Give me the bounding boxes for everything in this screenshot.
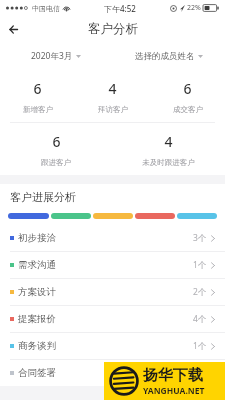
staticText: 跟进客户 [41, 158, 71, 167]
staticText: 需求沟通 [18, 259, 56, 271]
button[interactable]: 6 [150, 70, 225, 122]
staticText: 2个 [193, 286, 207, 298]
button[interactable]: 4 [112, 123, 225, 175]
staticText: 合同签署 [18, 367, 56, 379]
staticText: 4 [108, 79, 117, 98]
button[interactable]: 提案报价 [0, 306, 225, 332]
staticText: 方案设计 [18, 286, 56, 298]
staticText: 4个 [193, 313, 207, 325]
staticText: YANGHUA.NET [143, 385, 205, 397]
button[interactable]: 6 [0, 123, 112, 175]
staticText: 新增客户 [23, 105, 53, 114]
button[interactable]: 合同签署 [0, 360, 225, 386]
button[interactable]: 商务谈判 [0, 333, 225, 359]
staticText: 22% [187, 3, 201, 13]
button[interactable]: 选择的成员姓名 [112, 42, 225, 70]
staticText: 拜访客户 [98, 105, 128, 114]
staticText: 2020年3月 [31, 50, 73, 62]
staticText: 扬华下载 [143, 366, 203, 385]
staticText: 3个 [193, 232, 207, 244]
staticText: 6 [52, 132, 61, 151]
staticText: 6 [183, 79, 192, 98]
staticText: 下午4:52 [104, 3, 136, 14]
staticText: 商务谈判 [18, 340, 56, 352]
staticText: 1个 [193, 340, 207, 352]
staticText: 未及时跟进客户 [142, 158, 195, 167]
staticText: 4 [164, 132, 173, 151]
staticText: 中国电信 [32, 4, 60, 13]
button[interactable]: 2020年3月 [0, 42, 112, 70]
staticText: 6 [33, 79, 42, 98]
button[interactable]: 需求沟通 [0, 252, 225, 278]
staticText: 初步接洽 [18, 232, 56, 244]
staticText: 客户进展分析 [10, 190, 76, 204]
button[interactable]: 4 [75, 70, 150, 122]
staticText: 成交客户 [173, 105, 203, 114]
staticText: 选择的成员姓名 [135, 51, 195, 62]
button[interactable]: 初步接洽 [0, 225, 225, 251]
button[interactable]: 6 [0, 70, 75, 122]
staticText: 1个 [193, 259, 207, 271]
button[interactable]: Back [0, 16, 26, 42]
staticText: 1个 [193, 367, 207, 379]
staticText: 客户分析 [88, 21, 138, 37]
button[interactable]: 方案设计 [0, 279, 225, 305]
staticText: 提案报价 [18, 313, 56, 325]
